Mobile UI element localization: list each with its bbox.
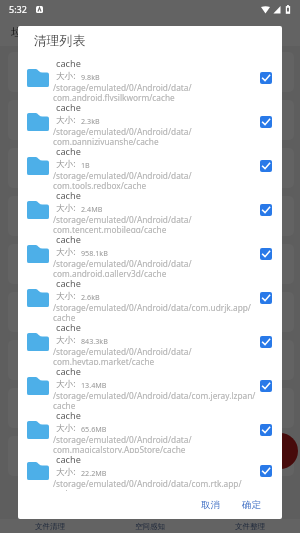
staticText: cache: [56, 277, 81, 290]
button[interactable]: cache: [18, 276, 282, 320]
staticText: 大小:: [56, 378, 76, 390]
button[interactable]: Selected: [260, 380, 272, 392]
staticText: 9.8kB: [81, 72, 100, 82]
staticText: 大小:: [56, 466, 76, 478]
staticText: /storage/emulated/0/Android/data/com.hey…: [53, 346, 259, 365]
staticText: cache: [56, 101, 81, 114]
staticText: 确定: [242, 499, 261, 511]
staticText: cache: [56, 189, 81, 202]
staticText: 大小:: [56, 290, 76, 302]
staticText: /storage/emulated/0/Android/data/com.mag…: [53, 434, 259, 453]
staticText: cache: [56, 321, 81, 334]
button[interactable]: 确定: [236, 494, 267, 516]
staticText: 文件整理: [235, 522, 265, 531]
staticText: 取消: [201, 499, 220, 511]
staticText: 大小:: [56, 422, 76, 434]
button[interactable]: Selected: [260, 336, 272, 348]
button[interactable]: cache: [18, 100, 282, 144]
staticText: 垃圾清理: [11, 25, 55, 39]
staticText: 大小:: [56, 202, 76, 214]
staticText: /storage/emulated/0/Android/data/com.jer…: [53, 390, 259, 409]
staticText: 22.2MB: [81, 468, 107, 478]
staticText: 958.1kB: [81, 248, 108, 258]
staticText: /storage/emulated/0/Android/data/com.ten…: [53, 214, 259, 233]
button[interactable]: cache: [18, 56, 282, 100]
button[interactable]: Selected: [260, 465, 272, 477]
staticText: /storage/emulated/0/Android/data/com.too…: [53, 170, 259, 189]
button[interactable]: cache: [18, 188, 282, 232]
button[interactable]: cache: [18, 144, 282, 188]
button[interactable]: 空间感知: [100, 519, 200, 533]
staticText: cache: [56, 365, 81, 378]
staticText: 大小:: [56, 114, 76, 126]
staticText: /storage/emulated/0/Android/data/com.and…: [53, 258, 259, 277]
button[interactable]: cache: [18, 452, 282, 490]
staticText: 大小:: [56, 246, 76, 258]
staticText: cache: [56, 145, 81, 158]
button[interactable]: Selected: [260, 72, 272, 84]
button[interactable]: Selected: [260, 292, 272, 304]
staticText: 大小:: [56, 334, 76, 346]
button[interactable]: 文件清理: [0, 519, 100, 533]
button[interactable]: Clean: [262, 433, 298, 469]
staticText: 1B: [81, 160, 90, 170]
staticText: 空间感知: [135, 522, 165, 531]
staticText: cache: [56, 57, 81, 70]
staticText: 清理列表: [34, 33, 86, 49]
staticText: /storage/emulated/0/Android/data/com.rtk…: [53, 478, 259, 491]
staticText: 5:32: [9, 3, 27, 15]
staticText: /storage/emulated/0/Android/data/com.and…: [53, 82, 259, 101]
staticText: cache: [56, 233, 81, 246]
staticText: 65.6MB: [81, 424, 107, 434]
staticText: cache: [56, 453, 81, 466]
staticText: 2.4MB: [81, 204, 103, 214]
staticText: 2.3kB: [81, 116, 100, 126]
staticText: /storage/emulated/0/Android/data/com.pan…: [53, 126, 259, 145]
button[interactable]: Selected: [260, 204, 272, 216]
staticText: 13.4MB: [81, 380, 107, 390]
button[interactable]: Selected: [260, 424, 272, 436]
button[interactable]: cache: [18, 232, 282, 276]
button[interactable]: cache: [18, 320, 282, 364]
staticText: 843.3kB: [81, 336, 108, 346]
button[interactable]: Selected: [260, 248, 272, 260]
staticText: 大小:: [56, 158, 76, 170]
button[interactable]: cache: [18, 364, 282, 408]
staticText: cache: [56, 409, 81, 422]
button[interactable]: Selected: [260, 160, 272, 172]
staticText: /storage/emulated/0/Android/data/com.udr…: [53, 302, 259, 321]
staticText: 2.6kB: [81, 292, 100, 302]
button[interactable]: cache: [18, 408, 282, 452]
button[interactable]: 文件整理: [200, 519, 300, 533]
button[interactable]: 取消: [195, 494, 226, 516]
staticText: 大小:: [56, 70, 76, 82]
button[interactable]: Selected: [260, 116, 272, 128]
staticText: 文件清理: [35, 522, 65, 531]
